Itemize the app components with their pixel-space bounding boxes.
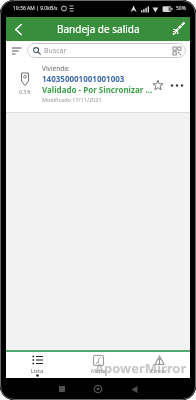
staticText: Vivienda: <box>42 64 70 73</box>
staticText: 140350001001001003 <box>42 73 125 84</box>
button[interactable] <box>10 44 24 58</box>
button[interactable]: 0.3 ft <box>6 60 190 112</box>
staticText: ApowerMirror <box>95 359 187 377</box>
button[interactable]: Lista <box>6 352 68 378</box>
staticText: Modificado 17/11/2021 <box>42 96 102 103</box>
button[interactable]: Mapa <box>68 352 129 378</box>
staticText: Buscar <box>44 46 67 56</box>
button[interactable] <box>52 379 72 399</box>
button[interactable]: Buscar <box>27 43 186 58</box>
button[interactable] <box>169 20 187 38</box>
staticText: Bandeja de salida <box>57 22 140 36</box>
button[interactable] <box>168 78 186 92</box>
staticText: Enviar <box>151 367 168 374</box>
staticText: 50% <box>176 5 186 12</box>
button[interactable] <box>10 21 26 37</box>
staticText: Validado - Por Sincronizar ... <box>42 84 153 95</box>
staticText: 10:36 AM | 9.0kB/s <box>13 5 58 12</box>
button[interactable] <box>88 379 108 399</box>
staticText: 0.3 ft <box>19 89 31 96</box>
staticText: Lista <box>31 367 44 374</box>
button[interactable] <box>151 78 165 92</box>
staticText: Mapa <box>91 367 106 374</box>
button[interactable]: Enviar <box>129 352 190 378</box>
button[interactable] <box>124 379 144 399</box>
